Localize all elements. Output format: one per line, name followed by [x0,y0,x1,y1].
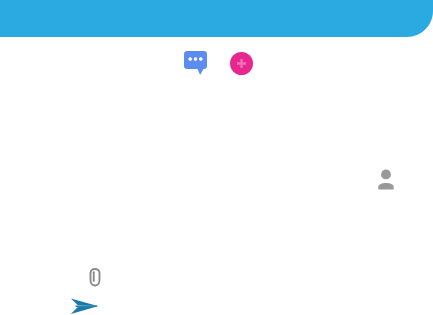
button[interactable]: Add [230,52,253,75]
button[interactable]: Profile [374,168,398,191]
button[interactable]: Messages [184,51,209,76]
button[interactable]: Attach file [86,266,104,290]
button[interactable]: Send [70,297,98,315]
